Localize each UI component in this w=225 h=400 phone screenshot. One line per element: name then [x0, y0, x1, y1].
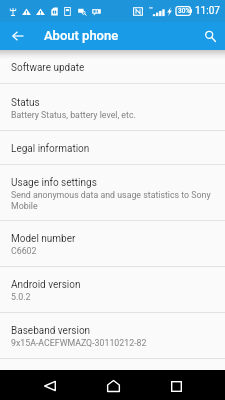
staticText: Status [11, 97, 40, 109]
button[interactable]: Search [195, 22, 225, 50]
staticText: 5.0.2 [11, 292, 31, 302]
button[interactable]: Android version [0, 267, 225, 313]
staticText: Send anonymous data and usage statistics… [11, 190, 215, 211]
button[interactable]: Back [33, 371, 67, 400]
staticText: Battery Status, battery level, etc. [11, 110, 136, 120]
button[interactable]: Recent apps [159, 371, 193, 400]
button[interactable]: Legal information [0, 131, 225, 165]
button[interactable]: Software update [0, 50, 225, 84]
staticText: Baseband version [11, 325, 91, 337]
button[interactable]: Usage info settings [0, 165, 225, 221]
staticText: 11:07 [195, 5, 220, 17]
staticText: About phone [44, 28, 119, 43]
button[interactable]: Status [0, 84, 225, 131]
staticText: Software update [11, 62, 85, 74]
staticText: 30% [178, 7, 191, 15]
staticText: Usage info settings [11, 177, 97, 189]
staticText: 9x15A-ACEFWMAZQ-30110212-82 [11, 338, 147, 348]
button[interactable]: Home [96, 371, 130, 400]
button[interactable]: Baseband version [0, 313, 225, 359]
button[interactable]: Model number [0, 221, 225, 267]
staticText: Model number [11, 233, 76, 245]
staticText: Android version [11, 279, 81, 291]
staticText: C6602 [11, 246, 37, 256]
button[interactable]: Navigate up [0, 22, 36, 50]
staticText: Legal information [11, 143, 90, 155]
